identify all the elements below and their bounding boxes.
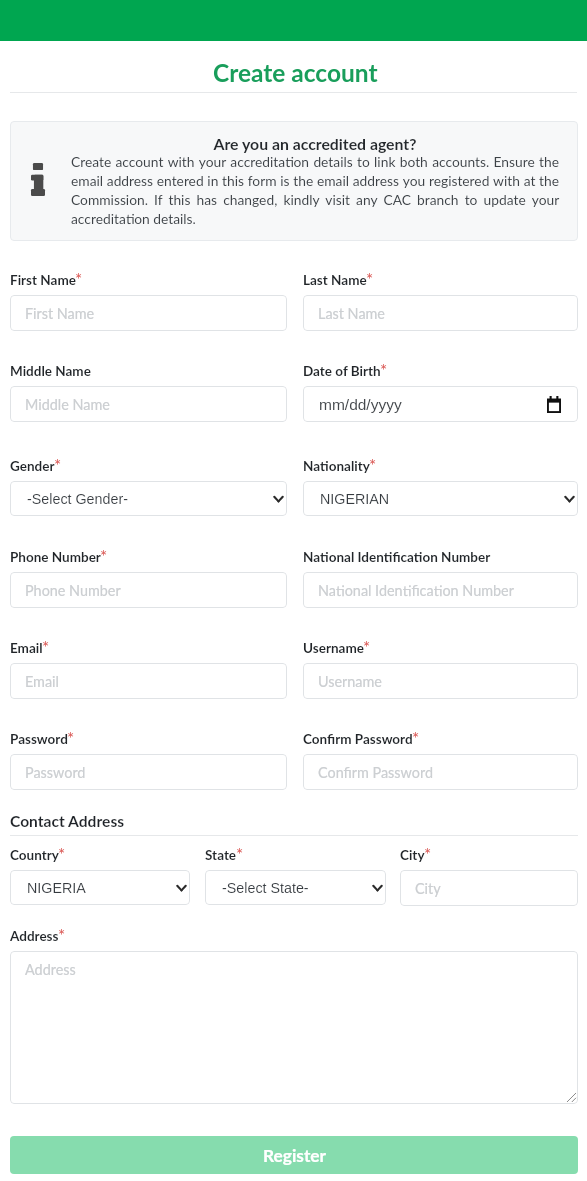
button[interactable]: Address: [10, 951, 578, 1104]
staticText: Username: [318, 673, 382, 690]
staticText: *: [58, 844, 66, 862]
staticText: Phone Number: [25, 582, 121, 599]
staticText: Create account: [213, 58, 378, 87]
button[interactable]: Username: [303, 663, 578, 699]
staticText: *: [412, 728, 420, 746]
staticText: *: [380, 360, 388, 378]
staticText: Nationality: [303, 458, 370, 474]
button[interactable]: Confirm Password: [303, 754, 578, 790]
staticText: -Select Gender-: [27, 491, 128, 507]
staticText: *: [369, 455, 377, 473]
button[interactable]: First Name: [10, 295, 287, 331]
other: Information: [31, 163, 45, 196]
staticText: *: [424, 844, 432, 862]
staticText: Contact Address: [10, 812, 125, 831]
staticText: Last Name: [303, 272, 367, 288]
staticText: *: [363, 637, 371, 655]
staticText: *: [42, 637, 50, 655]
button[interactable]: Last Name: [303, 295, 578, 331]
staticText: First Name: [10, 272, 76, 288]
button[interactable]: City: [400, 870, 578, 906]
button[interactable]: -Select State-: [205, 870, 386, 905]
staticText: *: [100, 546, 108, 564]
staticText: National Identification Number: [303, 549, 491, 565]
staticText: Register: [263, 1145, 326, 1166]
staticText: Email: [10, 640, 43, 656]
staticText: Date of Birth: [303, 363, 381, 379]
staticText: Gender: [10, 458, 55, 474]
button[interactable]: Email: [10, 663, 287, 699]
staticText: *: [75, 269, 83, 287]
button[interactable]: NIGERIAN: [303, 481, 578, 516]
staticText: Confirm Password: [303, 731, 413, 747]
staticText: *: [366, 269, 374, 287]
staticText: Middle Name: [10, 363, 91, 379]
staticText: Are you an accredited agent?: [71, 134, 559, 153]
staticText: *: [236, 844, 244, 862]
staticText: mm/dd/yyyy: [319, 396, 402, 413]
staticText: Middle Name: [25, 396, 110, 413]
staticText: *: [54, 455, 62, 473]
staticText: Password: [25, 764, 86, 781]
staticText: Address: [25, 961, 76, 978]
button[interactable]: Phone Number: [10, 572, 287, 608]
staticText: City: [400, 847, 425, 863]
staticText: National Identification Number: [318, 582, 514, 599]
button[interactable]: Date of birth, mm/dd/yyyy: [303, 386, 578, 422]
staticText: Create account with your accreditation d…: [71, 153, 559, 227]
staticText: *: [67, 728, 75, 746]
staticText: First Name: [25, 305, 95, 322]
staticText: -Select State-: [222, 880, 309, 896]
staticText: NIGERIA: [27, 880, 86, 896]
staticText: Email: [25, 673, 59, 690]
staticText: Username: [303, 640, 364, 656]
staticText: *: [58, 925, 66, 943]
staticText: Phone Number: [10, 549, 101, 565]
staticText: City: [415, 880, 441, 897]
button[interactable]: Register: [10, 1136, 578, 1174]
staticText: NIGERIAN: [320, 491, 390, 507]
staticText: Confirm Password: [318, 764, 433, 781]
button[interactable]: -Select Gender-: [10, 481, 287, 516]
button[interactable]: Middle Name: [10, 386, 287, 422]
staticText: Last Name: [318, 305, 385, 322]
staticText: State: [205, 847, 237, 863]
button[interactable]: National Identification Number: [303, 572, 578, 608]
staticText: Address: [10, 928, 59, 944]
button[interactable]: Password: [10, 754, 287, 790]
button[interactable]: NIGERIA: [10, 870, 190, 905]
staticText: Country: [10, 847, 59, 863]
staticText: Password: [10, 731, 68, 747]
